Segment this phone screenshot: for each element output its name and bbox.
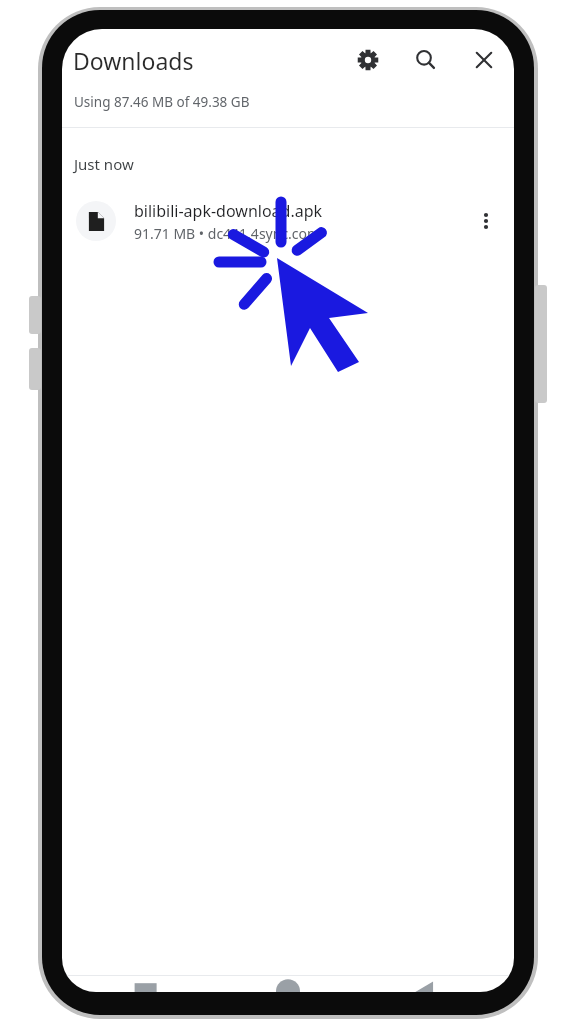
button[interactable]: Settings xyxy=(346,38,390,82)
staticText: Downloads xyxy=(73,45,194,76)
staticText: Using 87.46 MB of 49.38 GB xyxy=(74,93,250,111)
button[interactable]: Close xyxy=(462,38,506,82)
button[interactable]: bilibili-apk-download.apk xyxy=(62,190,514,252)
staticText: Just now xyxy=(74,154,134,174)
button[interactable]: Search xyxy=(404,38,448,82)
staticText: 91.71 MB • dc441.4sync.com xyxy=(134,224,321,243)
button[interactable]: More options xyxy=(464,199,508,243)
staticText: bilibili-apk-download.apk xyxy=(134,200,323,222)
